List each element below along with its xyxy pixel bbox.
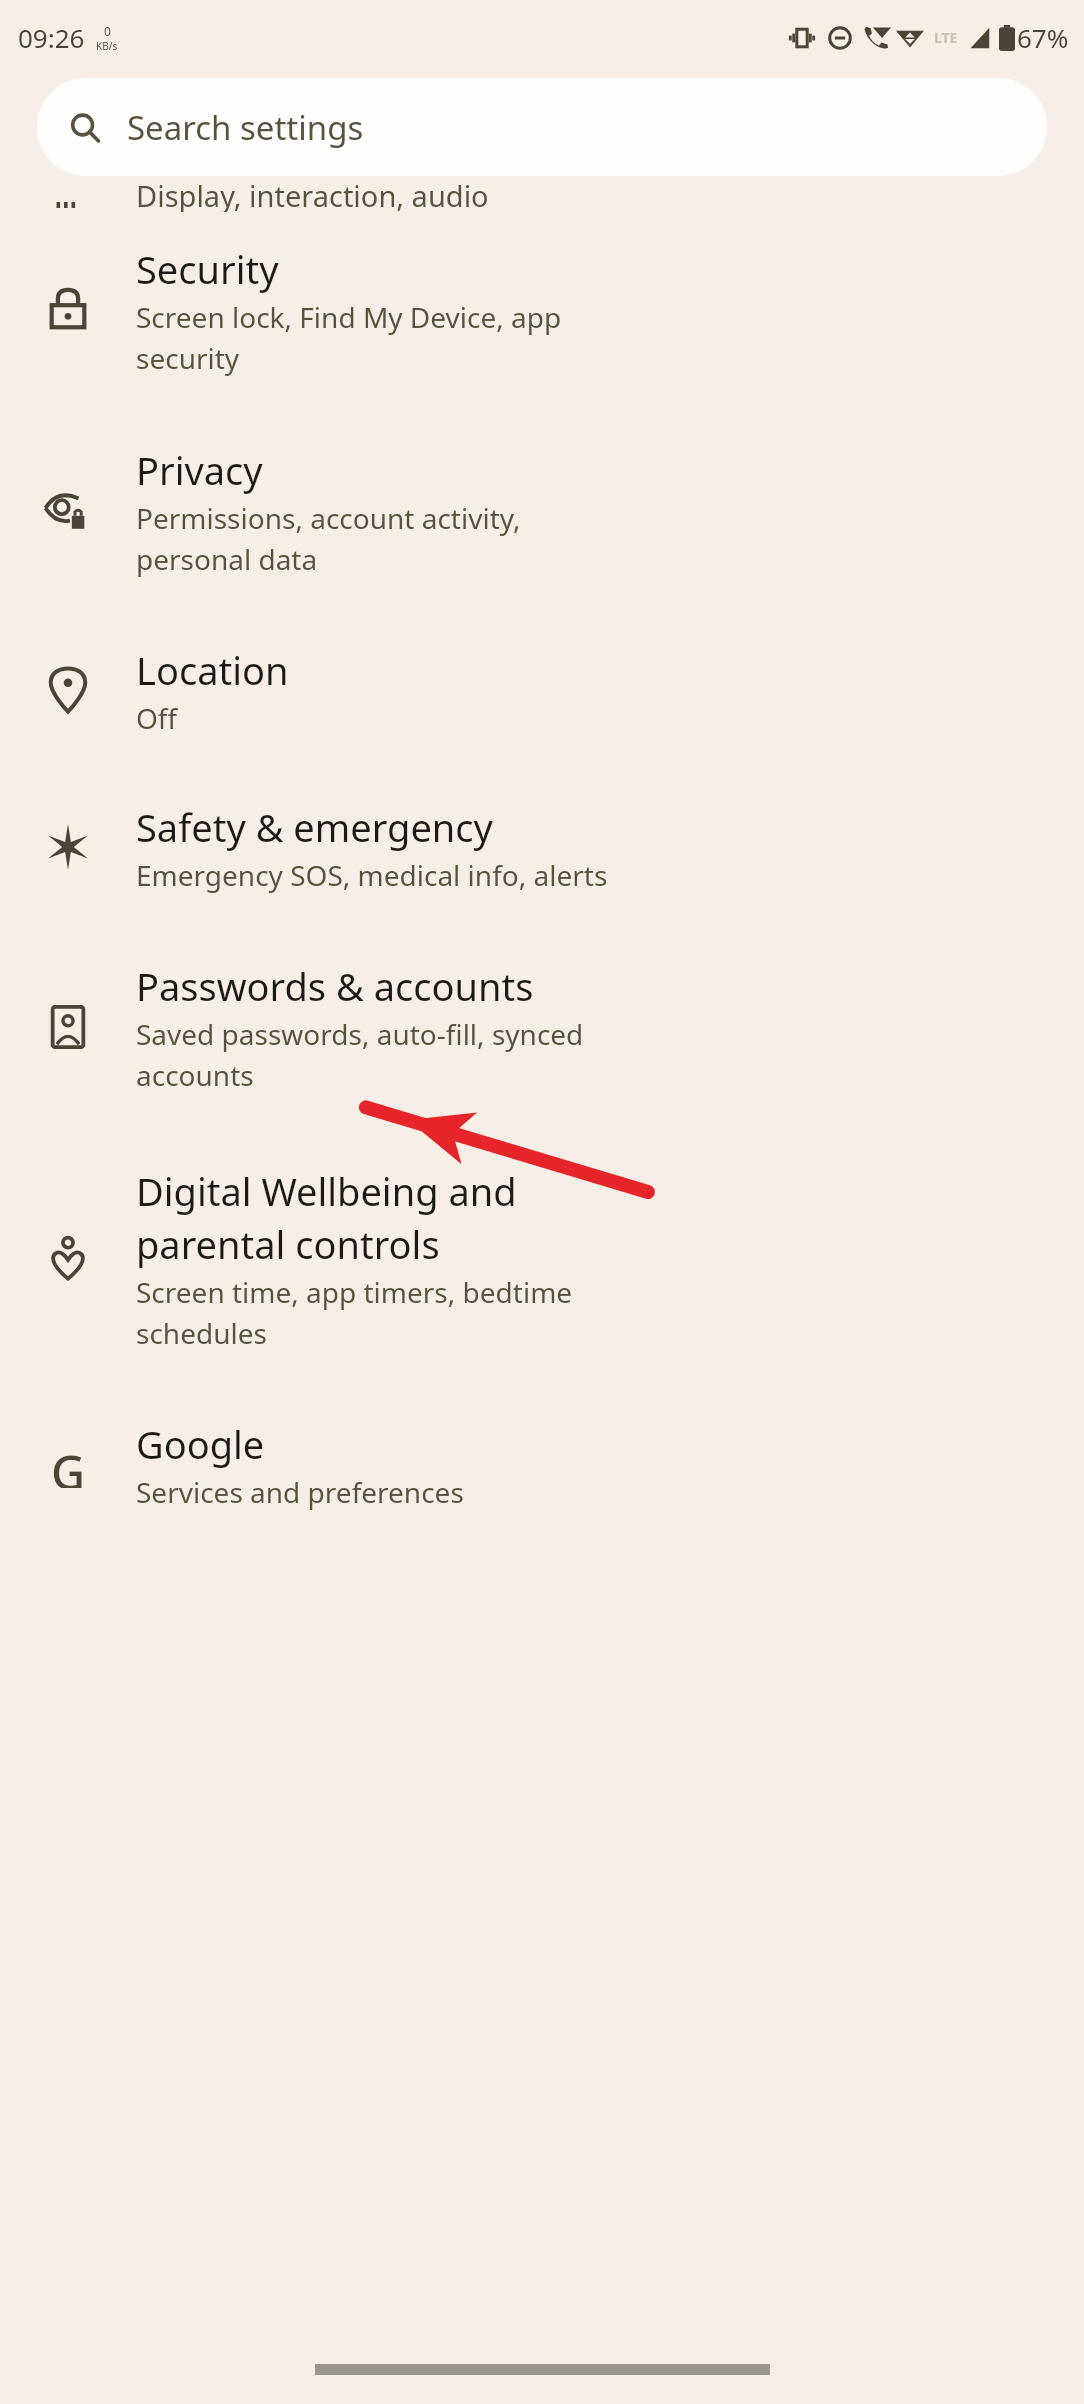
button[interactable]: Display, interaction, audio <box>0 176 1084 212</box>
staticText: Security <box>136 243 279 295</box>
staticText: G <box>51 1440 86 1488</box>
staticText: 0 <box>104 23 111 39</box>
staticText: Google <box>136 1418 265 1470</box>
staticText: 67% <box>1017 20 1069 55</box>
staticText: Services and preferences <box>136 1473 464 1511</box>
staticText: Permissions, account activity, personal … <box>136 499 521 578</box>
staticText: Saved passwords, auto-fill, synced accou… <box>136 1015 584 1094</box>
staticText: Digital Wellbeing and parental controls <box>136 1165 517 1270</box>
staticText: Screen lock, Find My Device, app securit… <box>136 298 562 377</box>
staticText: Screen time, app timers, bedtime schedul… <box>136 1273 573 1352</box>
other: Google <box>0 1440 136 1488</box>
button[interactable]: Security <box>0 212 1084 408</box>
other: Privacy <box>0 487 136 535</box>
staticText: KB/s <box>96 39 118 53</box>
button[interactable]: Privacy <box>0 408 1084 613</box>
staticText: Safety & emergency <box>136 801 493 853</box>
other: Location <box>0 666 136 714</box>
other: Safety and emergency <box>0 823 136 871</box>
staticText: Display, interaction, audio <box>136 176 489 212</box>
button[interactable]: Passwords and accounts <box>0 927 1084 1127</box>
staticText: Emergency SOS, medical info, alerts <box>136 856 608 894</box>
other: Passwords and accounts <box>0 1003 136 1051</box>
staticText: Off <box>136 699 178 737</box>
other: Security <box>0 286 136 334</box>
staticText: LTE <box>934 28 958 47</box>
staticText: 09:26 <box>18 20 85 55</box>
button[interactable]: Location <box>0 613 1084 767</box>
staticText: Location <box>136 644 289 696</box>
button[interactable]: Search settings <box>37 78 1047 176</box>
staticText: Privacy <box>136 444 263 496</box>
button[interactable]: Digital Wellbeing <box>0 1127 1084 1389</box>
other: Digital Wellbeing <box>0 1234 136 1282</box>
staticText: Search settings <box>127 105 364 150</box>
staticText: Passwords & accounts <box>136 960 534 1012</box>
button[interactable]: Safety and emergency <box>0 767 1084 927</box>
button[interactable]: Google <box>0 1389 1084 1539</box>
